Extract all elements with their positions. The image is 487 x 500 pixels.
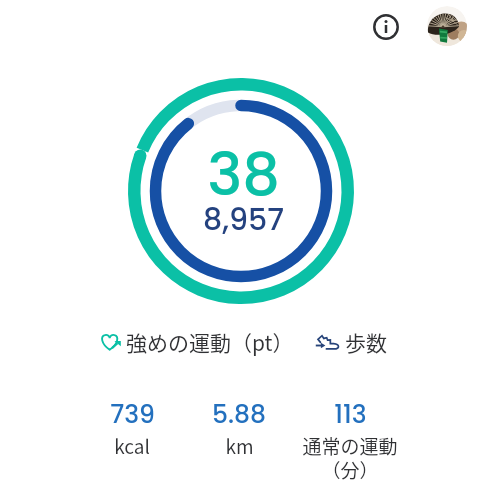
button[interactable]: 113 — [290, 397, 410, 484]
staticText: 5.88 — [212, 397, 266, 432]
staticText: km — [225, 432, 254, 460]
staticText: 739 — [110, 397, 155, 432]
staticText: 113 — [334, 397, 367, 432]
staticText: 38 — [207, 133, 280, 216]
button[interactable]: 5.88 — [179, 397, 299, 460]
staticText: 強めの運動（pt） — [126, 327, 294, 357]
button[interactable]: 歩数 — [315, 327, 387, 357]
staticText: kcal — [114, 432, 150, 460]
button[interactable]: Information — [364, 5, 408, 49]
button[interactable]: 739 — [72, 397, 192, 460]
staticText: 通常の運動 （分） — [302, 432, 398, 484]
staticText: 8,957 — [203, 199, 284, 241]
staticText: 歩数 — [345, 327, 387, 357]
button[interactable]: Profile — [425, 4, 469, 48]
button[interactable]: 強めの運動（pt） — [100, 327, 294, 357]
button[interactable]: Daily activity rings — [128, 78, 354, 304]
